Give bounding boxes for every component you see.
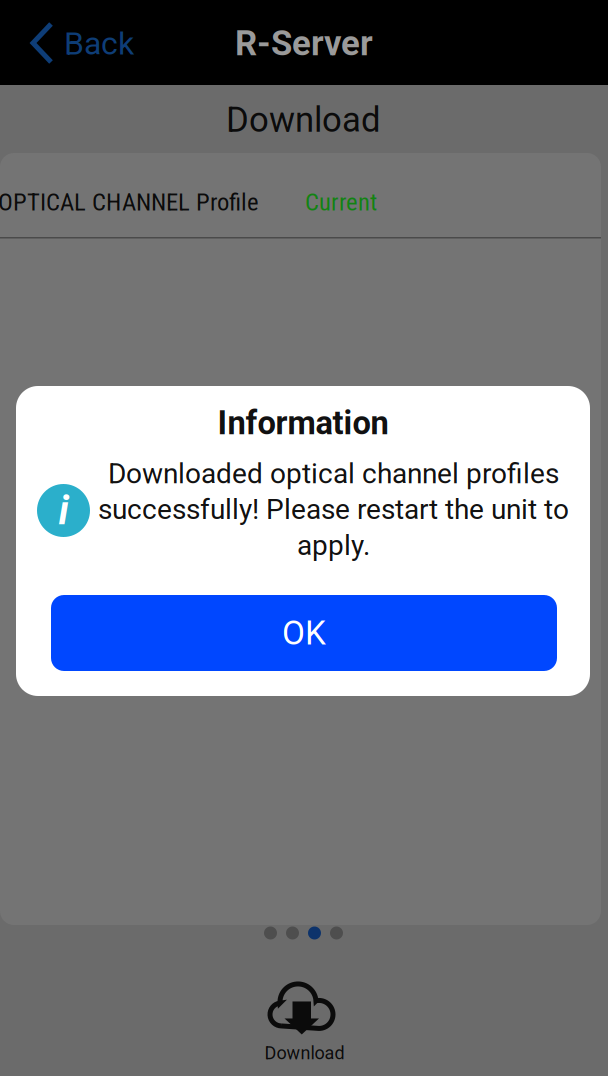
staticText: R-Server — [235, 23, 373, 64]
button[interactable]: OK — [51, 595, 557, 671]
staticText: Information — [217, 404, 388, 442]
button[interactable]: Back — [0, 0, 150, 85]
staticText: Download — [226, 100, 381, 140]
staticText: OPTICAL CHANNEL Profile — [0, 187, 259, 216]
staticText: Downloaded optical channel profiles — [108, 457, 559, 490]
staticText: successfully! Please restart the unit to — [98, 493, 569, 526]
staticText: Download — [264, 1042, 344, 1064]
button[interactable]: OPTICAL CHANNEL Profile — [0, 153, 601, 237]
staticText: Back — [64, 25, 134, 62]
staticText: i — [58, 487, 68, 534]
staticText: apply. — [297, 529, 370, 562]
staticText: OK — [282, 613, 326, 653]
button[interactable]: Download — [210, 976, 390, 1076]
staticText: Current — [305, 187, 377, 216]
